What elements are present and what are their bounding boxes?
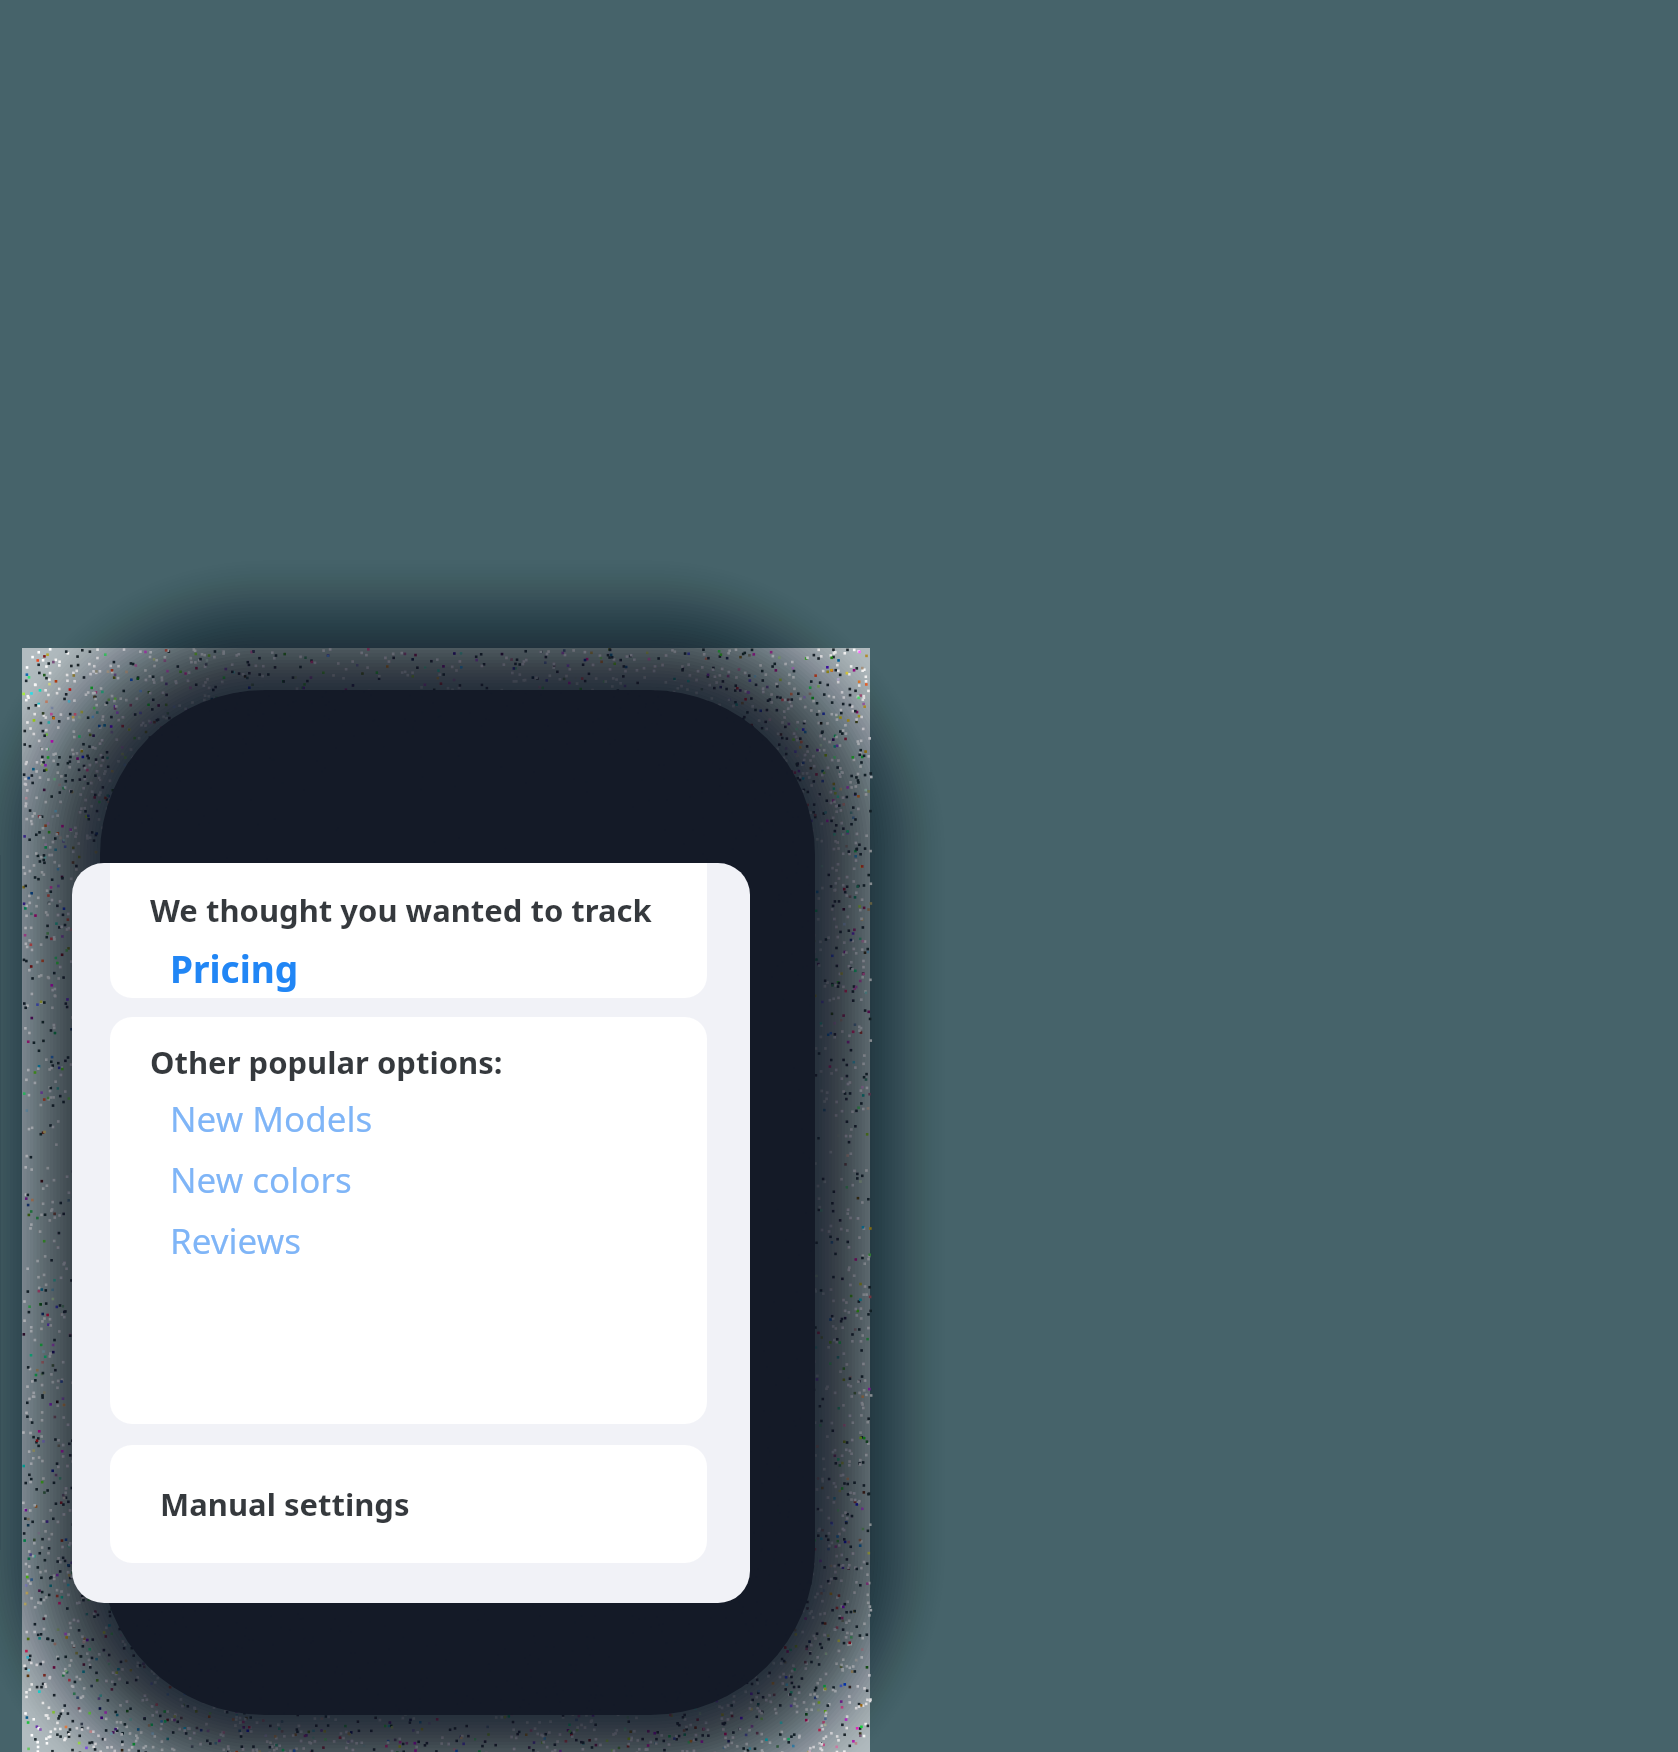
staticText: Pricing bbox=[170, 943, 299, 993]
staticText: Other popular options: bbox=[150, 1041, 503, 1083]
button[interactable]: New Models bbox=[170, 1095, 490, 1151]
button[interactable]: Reviews bbox=[170, 1217, 490, 1273]
staticText: Manual settings bbox=[160, 1483, 410, 1525]
staticText: We thought you wanted to track bbox=[150, 889, 652, 931]
button[interactable]: Manual settings bbox=[110, 1445, 707, 1563]
staticText: Reviews bbox=[170, 1217, 301, 1265]
button[interactable]: We thought you wanted to track bbox=[110, 863, 707, 998]
staticText: New colors bbox=[170, 1156, 352, 1204]
staticText: New Models bbox=[170, 1095, 373, 1143]
button[interactable]: New colors bbox=[170, 1156, 490, 1212]
